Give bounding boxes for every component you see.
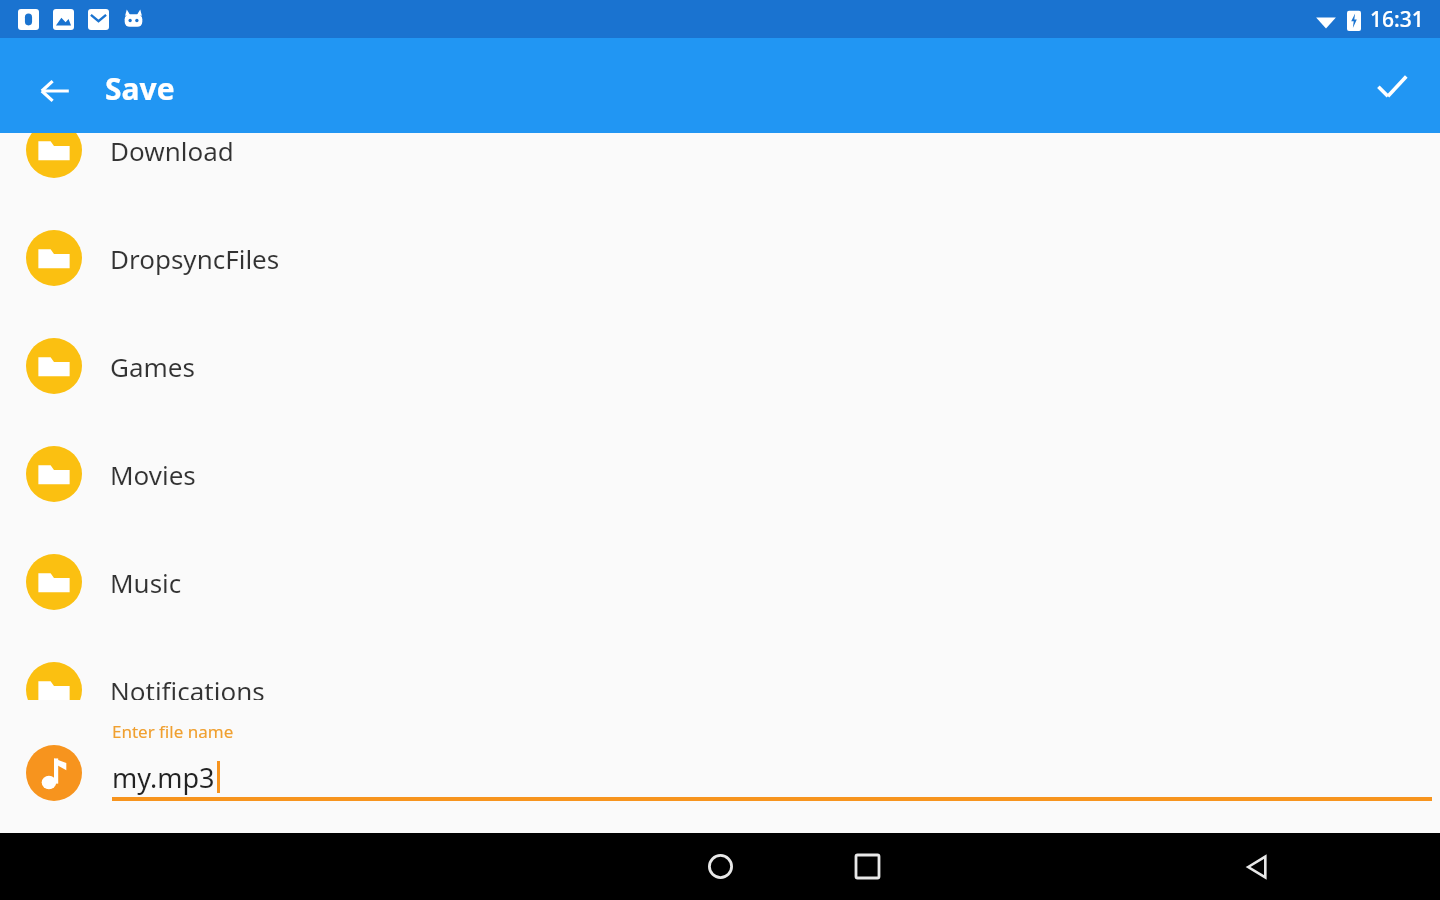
button[interactable]: Back xyxy=(22,58,88,124)
button[interactable]: Games xyxy=(0,312,1440,420)
button[interactable]: Back xyxy=(537,833,1440,900)
staticText: Notifications xyxy=(110,673,265,708)
button[interactable]: Download xyxy=(0,96,1440,204)
button[interactable]: Movies xyxy=(0,420,1440,528)
staticText: Download xyxy=(110,133,234,168)
staticText: Enter file name xyxy=(112,720,234,743)
button[interactable]: DropsyncFiles xyxy=(0,204,1440,312)
staticText: Movies xyxy=(110,457,196,492)
staticText: my.mp3 xyxy=(112,759,215,796)
button[interactable]: Save xyxy=(105,68,175,108)
staticText: Games xyxy=(110,349,195,384)
button[interactable]: Audio file xyxy=(26,745,82,801)
staticText: Save xyxy=(105,68,175,108)
button[interactable]: my.mp3 xyxy=(112,755,1432,799)
staticText: Music xyxy=(110,565,182,600)
button[interactable]: Home xyxy=(684,833,756,900)
button[interactable]: Music xyxy=(0,528,1440,636)
staticText: DropsyncFiles xyxy=(110,241,280,276)
button[interactable]: Recent apps xyxy=(831,833,903,900)
button[interactable]: Notifications xyxy=(0,636,1440,744)
staticText: 16:31 xyxy=(1370,5,1424,34)
button[interactable]: Confirm xyxy=(1358,52,1426,120)
